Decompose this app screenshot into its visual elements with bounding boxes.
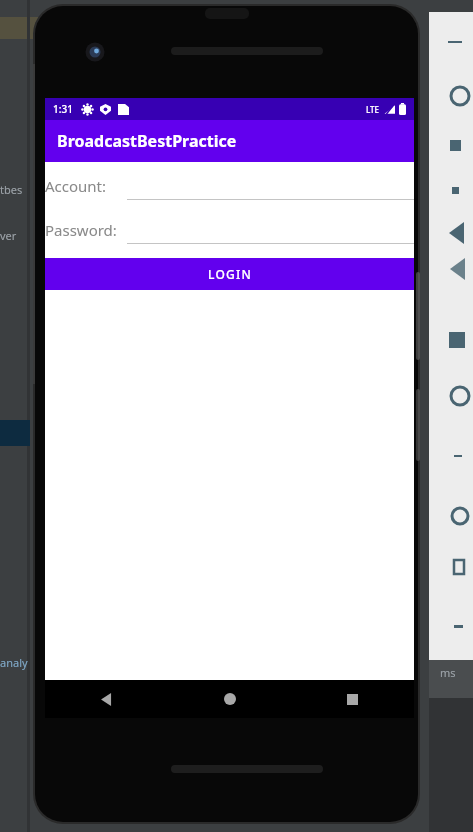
button[interactable]: Recent apps — [291, 680, 414, 718]
staticText: LOGIN — [208, 266, 252, 282]
button[interactable]: Back — [45, 680, 168, 718]
staticText: Account: — [45, 176, 127, 196]
staticText: BroadcastBestPractice — [57, 130, 237, 152]
staticText: ver — [0, 228, 17, 243]
button[interactable]: Home — [168, 680, 291, 718]
button[interactable] — [127, 172, 414, 200]
button[interactable] — [127, 216, 414, 244]
staticText: LTE — [366, 104, 380, 115]
staticText: analy — [0, 655, 28, 670]
staticText: 1:31 — [53, 102, 73, 116]
staticText: tbes — [0, 182, 23, 197]
staticText: ms — [440, 665, 456, 680]
button[interactable]: LOGIN — [45, 258, 414, 290]
staticText: Password: — [45, 220, 127, 240]
